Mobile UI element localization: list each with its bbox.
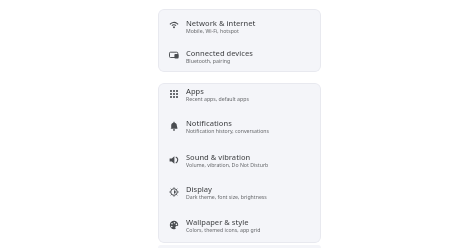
staticText: Dark theme, font size, brightness <box>186 193 267 200</box>
staticText: Bluetooth, pairing <box>186 57 231 64</box>
staticText: Network & internet <box>186 18 256 28</box>
staticText: Wallpaper & style <box>186 217 249 227</box>
button[interactable]: Apps <box>158 83 321 111</box>
button[interactable]: Notifications <box>158 111 321 143</box>
button[interactable]: Display <box>158 177 321 209</box>
button[interactable]: Sound & vibration <box>158 145 321 177</box>
staticText: Mobile, Wi-Fi, hotspot <box>186 27 239 34</box>
button[interactable]: Connected devices <box>158 41 321 72</box>
staticText: Notification history, conversations <box>186 127 270 134</box>
staticText: Colors, themed icons, app grid <box>186 226 261 233</box>
button[interactable]: Network & internet <box>158 11 321 43</box>
staticText: Display <box>186 184 213 194</box>
button[interactable]: Wallpaper & style <box>158 210 321 242</box>
staticText: Connected devices <box>186 48 253 58</box>
staticText: Notifications <box>186 118 232 128</box>
staticText: Apps <box>186 86 204 96</box>
staticText: Recent apps, default apps <box>186 95 249 102</box>
staticText: Volume, vibration, Do Not Disturb <box>186 161 269 168</box>
staticText: Sound & vibration <box>186 152 251 162</box>
